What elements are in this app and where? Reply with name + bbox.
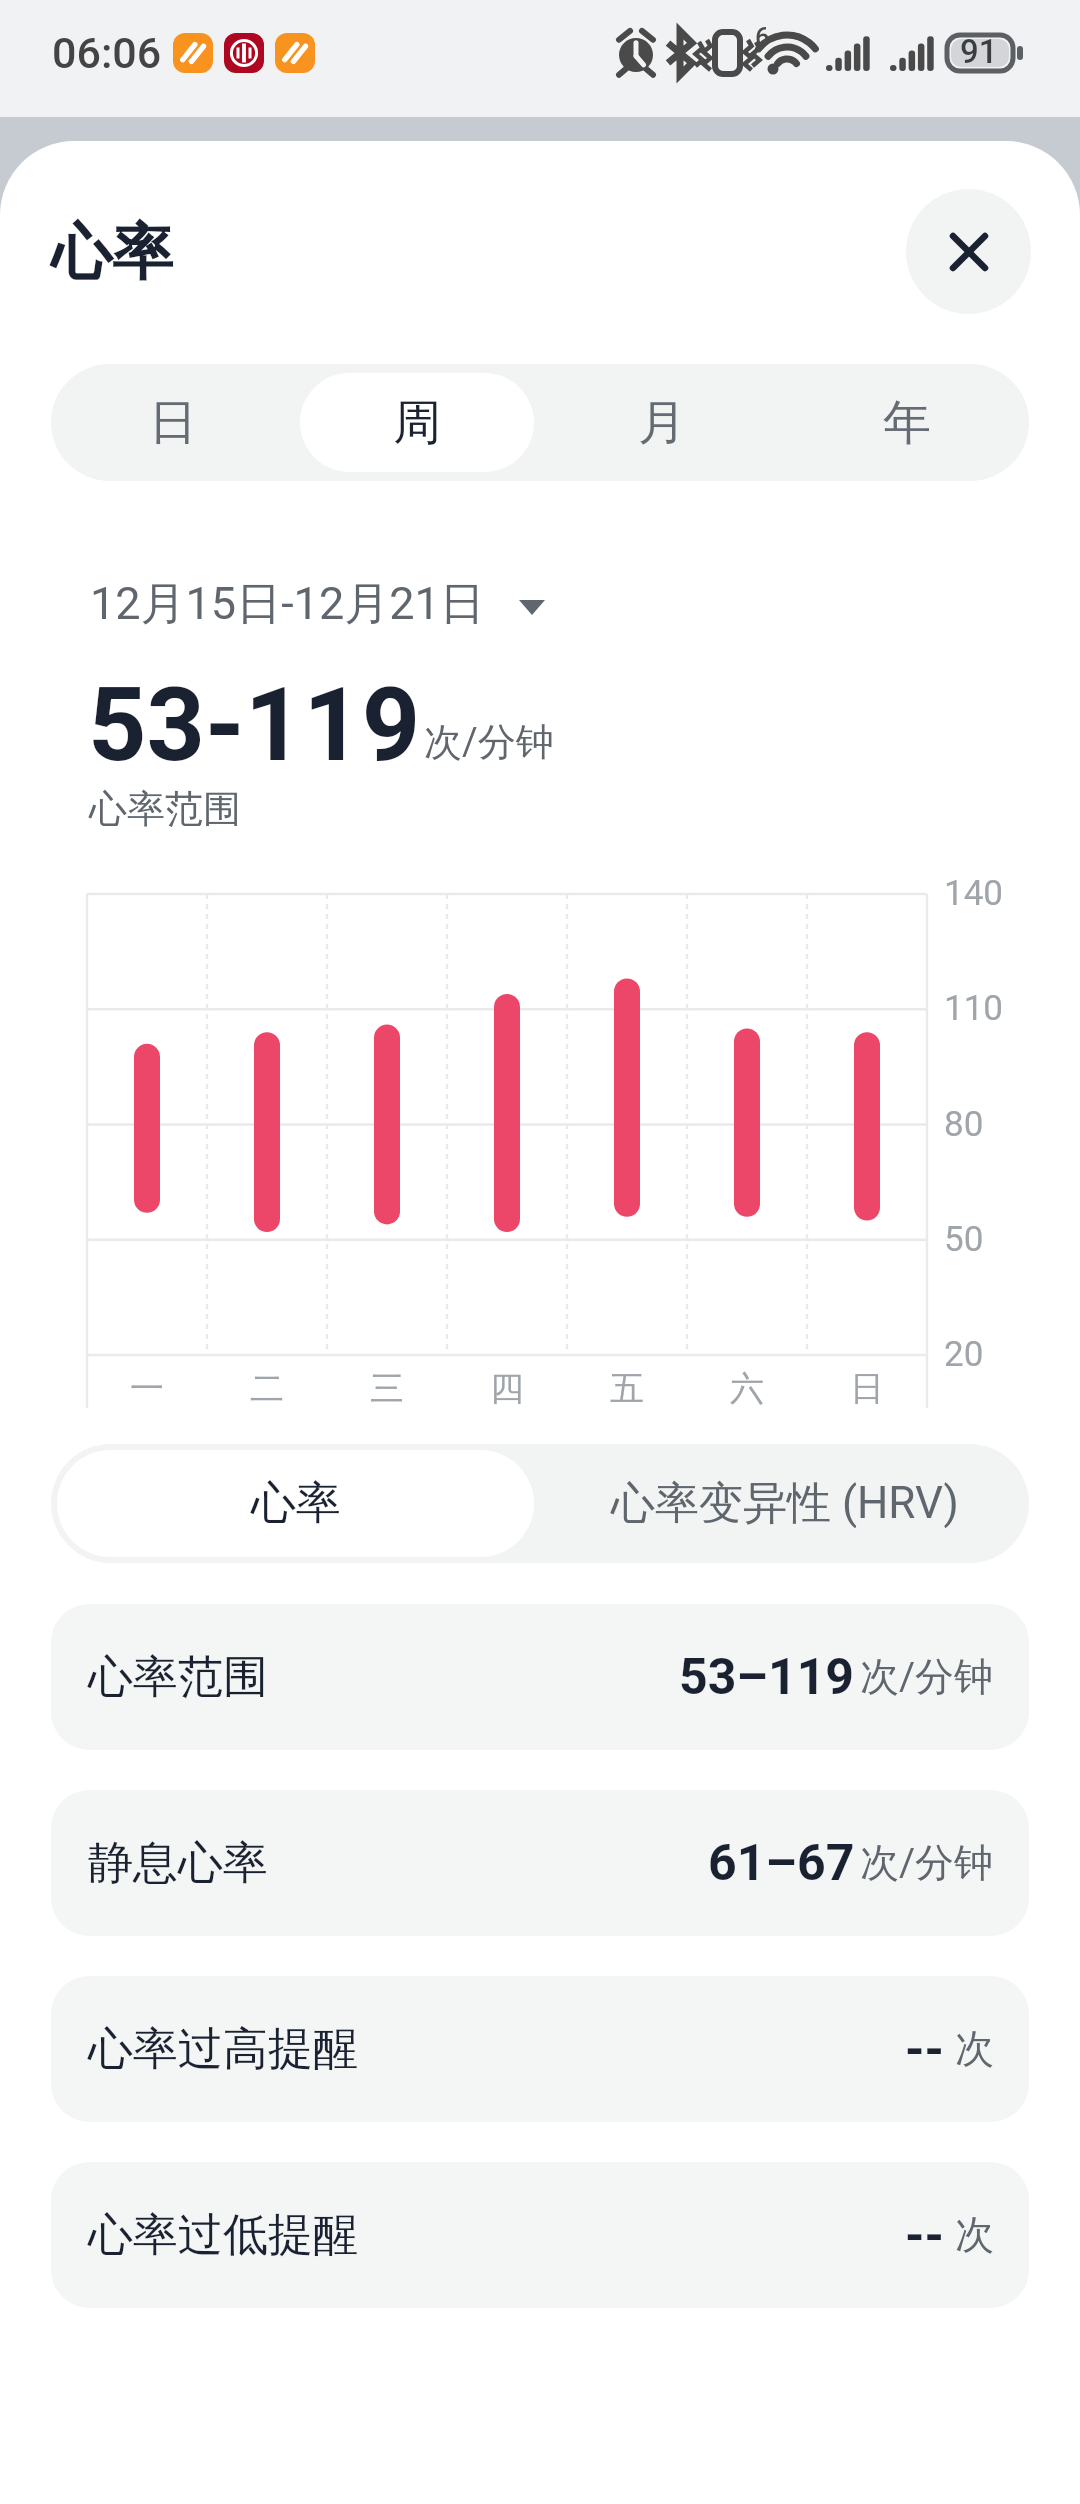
staticText: 6	[755, 22, 770, 52]
staticText: 六	[730, 1367, 764, 1410]
staticText: 心率	[251, 1475, 341, 1532]
staticText: 日	[149, 393, 197, 453]
staticText: --	[905, 2206, 944, 2265]
staticText: 140	[944, 873, 1004, 914]
staticText: 91	[960, 32, 998, 71]
staticText: 二	[250, 1367, 284, 1410]
staticText: 06:06	[52, 28, 162, 78]
staticText: 五	[610, 1367, 644, 1410]
staticText: 月	[638, 393, 686, 453]
staticText: 一	[130, 1367, 164, 1410]
staticText: 12月15日-12月21日	[90, 576, 485, 633]
staticText: 心率过低提醒	[88, 2207, 358, 2264]
button[interactable]: 周	[300, 373, 534, 472]
staticText: 心率范围	[88, 1649, 268, 1706]
button[interactable]: 月	[544, 373, 779, 472]
staticText: 53–119	[679, 1648, 855, 1707]
button[interactable]: 年	[789, 373, 1024, 472]
staticText: 80	[944, 1104, 984, 1145]
staticText: 周	[393, 393, 441, 453]
button[interactable]: 心率变异性 (HRV)	[540, 1444, 1029, 1563]
staticText: 次/分钟	[860, 1652, 994, 1701]
staticText: 心率变异性 (HRV)	[611, 1476, 959, 1531]
staticText: 次	[955, 2024, 994, 2073]
staticText: 次/分钟	[424, 718, 554, 766]
staticText: --	[905, 2020, 944, 2079]
button[interactable]: 日	[56, 373, 290, 472]
button[interactable]: 心率过低提醒	[51, 2162, 1029, 2308]
staticText: 110	[944, 988, 1004, 1029]
staticText: 心率	[51, 214, 173, 291]
button[interactable]: Close	[906, 189, 1031, 314]
staticText: 53-119	[88, 665, 421, 785]
button[interactable]: 心率	[57, 1450, 534, 1557]
staticText: 20	[944, 1334, 984, 1375]
button[interactable]: 静息心率	[51, 1790, 1029, 1936]
button[interactable]: 心率过高提醒	[51, 1976, 1029, 2122]
button[interactable]: 心率范围	[51, 1604, 1029, 1750]
staticText: 50	[944, 1219, 984, 1260]
staticText: 年	[883, 393, 931, 453]
staticText: 三	[370, 1367, 404, 1410]
staticText: 次/分钟	[860, 1838, 994, 1887]
staticText: 心率过高提醒	[88, 2021, 358, 2078]
staticText: 次	[955, 2210, 994, 2259]
staticText: 心率范围	[89, 785, 241, 833]
staticText: 日	[850, 1367, 884, 1410]
staticText: 61–67	[708, 1834, 855, 1893]
staticText: 四	[490, 1367, 524, 1410]
staticText: 静息心率	[88, 1835, 268, 1892]
